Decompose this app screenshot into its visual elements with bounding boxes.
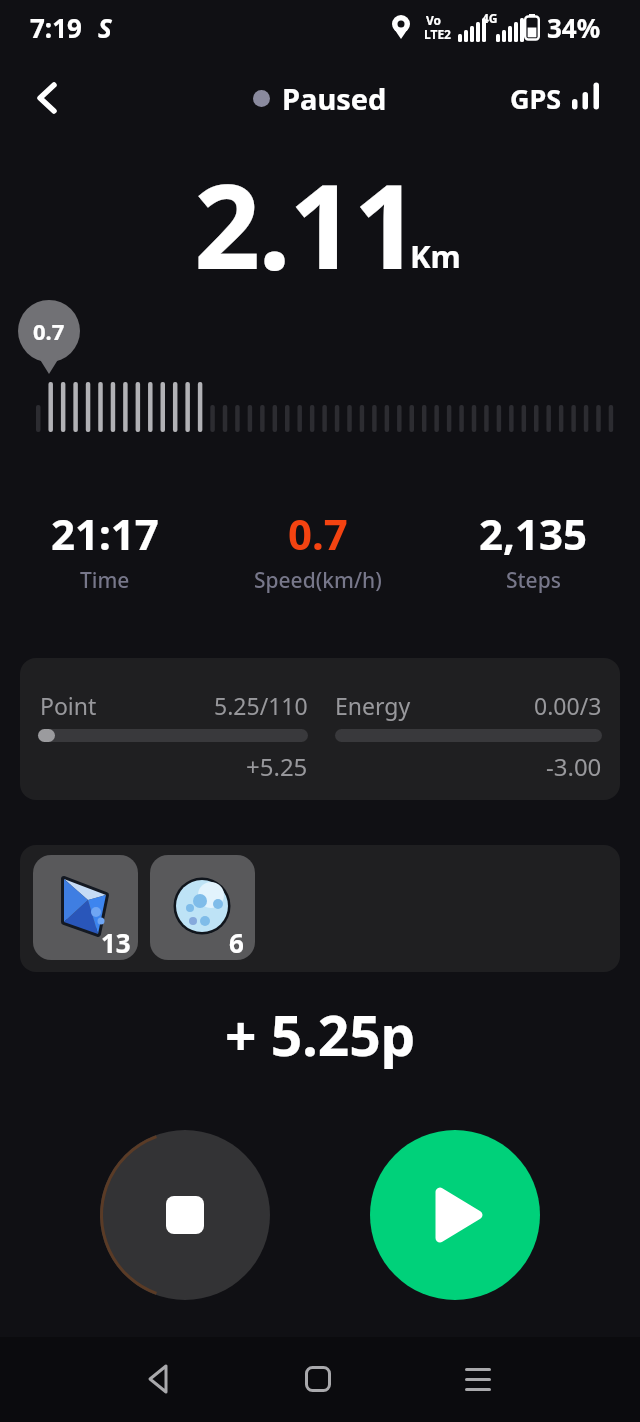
staticText: Vo — [426, 12, 442, 28]
staticText: 5.25/110 — [214, 690, 308, 721]
staticText: 2,135 — [479, 505, 588, 562]
staticText: 4G — [482, 10, 498, 26]
staticText: Time — [80, 566, 130, 595]
staticText: Steps — [506, 566, 561, 595]
button[interactable] — [130, 1349, 190, 1409]
button[interactable]: GPS — [510, 74, 600, 122]
staticText: 6 — [229, 925, 244, 960]
button[interactable] — [288, 1349, 348, 1409]
button[interactable] — [448, 1349, 508, 1409]
staticText: -3.00 — [546, 750, 602, 783]
staticText: S — [98, 10, 112, 45]
button[interactable] — [370, 1130, 540, 1300]
staticText: + 5.25p — [225, 997, 416, 1072]
staticText: +5.25 — [246, 750, 308, 783]
staticText: Speed(km/h) — [254, 566, 382, 595]
staticText: Paused — [282, 79, 387, 118]
button[interactable] — [100, 1130, 270, 1300]
staticText: 7:19 — [30, 10, 82, 45]
staticText: Energy — [335, 690, 411, 721]
staticText: 13 — [101, 925, 131, 960]
staticText: 0.00/3 — [534, 690, 602, 721]
staticText: GPS — [510, 80, 562, 117]
button[interactable] — [20, 70, 76, 126]
staticText: Km — [410, 235, 461, 277]
staticText: 21:17 — [51, 505, 159, 562]
button[interactable]: 13 — [33, 855, 138, 960]
staticText: 34% — [547, 10, 601, 45]
button[interactable]: 6 — [150, 855, 255, 960]
staticText: Point — [40, 690, 97, 721]
staticText: 2.11 — [194, 145, 418, 303]
staticText: 0.7 — [288, 505, 348, 562]
staticText: 0.7 — [33, 316, 65, 346]
staticText: LTE2 — [424, 26, 451, 42]
